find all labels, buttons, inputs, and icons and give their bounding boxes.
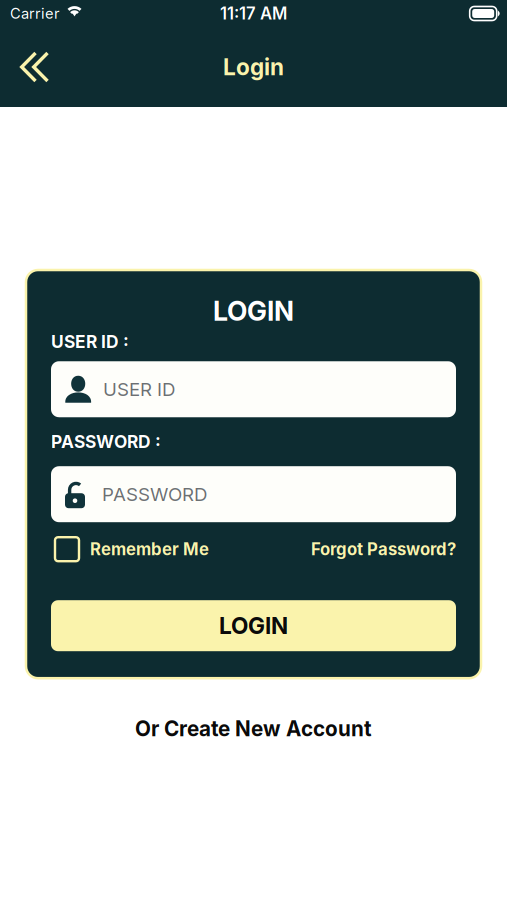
staticText: USER ID :: [51, 331, 129, 352]
button[interactable]: USER ID: [51, 361, 456, 417]
button[interactable]: PASSWORD: [51, 466, 456, 522]
staticText: PASSWORD :: [51, 431, 161, 452]
staticText: Remember Me: [90, 539, 209, 559]
staticText: Or Create New Account: [135, 716, 372, 741]
staticText: PASSWORD: [102, 483, 207, 505]
button[interactable]: Forgot Password?: [311, 539, 456, 559]
button[interactable]: Remember Me: [51, 537, 209, 561]
staticText: Forgot Password?: [311, 539, 456, 559]
staticText: Login: [223, 53, 284, 81]
staticText: Carrier: [10, 5, 60, 22]
button[interactable]: LOGIN: [51, 600, 456, 651]
staticText: LOGIN: [219, 612, 288, 639]
button[interactable]: Back: [0, 37, 68, 97]
staticText: 11:17 AM: [220, 3, 287, 24]
staticText: LOGIN: [213, 295, 294, 327]
staticText: USER ID: [103, 378, 175, 400]
